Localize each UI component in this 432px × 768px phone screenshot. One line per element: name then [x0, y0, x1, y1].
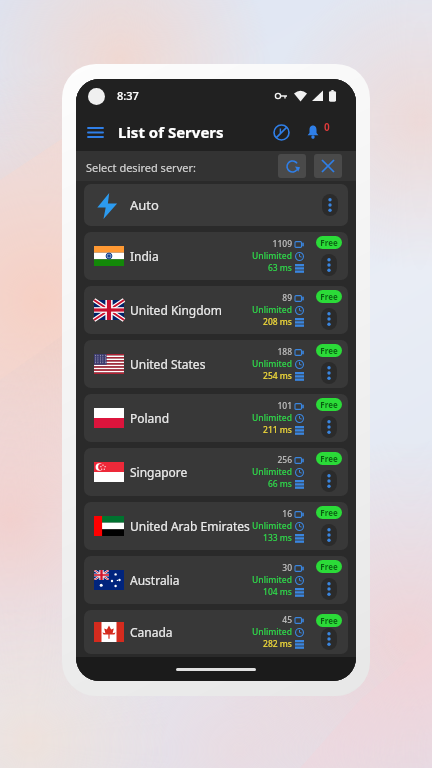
- staticText: Unlimited: [252, 574, 292, 586]
- staticText: United Kingdom: [130, 302, 260, 318]
- staticText: 211 ms: [263, 424, 292, 436]
- button[interactable]: United Kingdom: [84, 286, 348, 334]
- button[interactable]: More options: [321, 628, 337, 650]
- staticText: 89: [282, 292, 292, 304]
- button[interactable]: Free: [316, 344, 342, 357]
- staticText: Canada: [130, 624, 260, 640]
- staticText: Unlimited: [252, 304, 292, 316]
- button[interactable]: Free: [316, 614, 342, 627]
- staticText: List of Servers: [118, 122, 224, 142]
- staticText: 101: [277, 400, 292, 412]
- staticText: Free: [320, 291, 338, 302]
- staticText: Auto: [130, 196, 159, 214]
- staticText: 1109: [272, 238, 292, 250]
- button[interactable]: More options: [321, 416, 337, 438]
- button[interactable]: United States: [84, 340, 348, 388]
- button[interactable]: United Arab Emirates: [84, 502, 348, 550]
- staticText: Poland: [130, 410, 260, 426]
- button[interactable]: Poland: [84, 394, 348, 442]
- staticText: Unlimited: [252, 466, 292, 478]
- button[interactable]: Australia: [84, 556, 348, 604]
- staticText: 66 ms: [267, 478, 292, 490]
- staticText: 8:37: [117, 88, 139, 103]
- staticText: Unlimited: [252, 412, 292, 424]
- button[interactable]: Free: [316, 560, 342, 573]
- staticText: 45: [282, 614, 292, 626]
- staticText: Free: [320, 399, 338, 410]
- staticText: Australia: [130, 572, 260, 588]
- staticText: Free: [320, 561, 338, 572]
- staticText: United States: [130, 356, 260, 372]
- button[interactable]: Clear: [314, 154, 342, 178]
- staticText: Singapore: [130, 464, 260, 480]
- button[interactable]: More options: [321, 578, 337, 600]
- staticText: Unlimited: [252, 358, 292, 370]
- button[interactable]: More options: [321, 470, 337, 492]
- staticText: 30: [282, 562, 292, 574]
- staticText: Unlimited: [252, 520, 292, 532]
- button[interactable]: More options: [321, 524, 337, 546]
- staticText: 104 ms: [263, 586, 292, 598]
- staticText: Unlimited: [252, 250, 292, 262]
- staticText: Free: [320, 345, 338, 356]
- button[interactable]: VPN disconnected: [268, 119, 294, 145]
- staticText: 133 ms: [263, 532, 292, 544]
- button[interactable]: Auto: [84, 184, 348, 226]
- button[interactable]: More options: [321, 362, 337, 384]
- staticText: Free: [320, 615, 338, 626]
- button[interactable]: More options: [321, 308, 337, 330]
- staticText: 208 ms: [263, 316, 292, 328]
- button[interactable]: Free: [316, 452, 342, 465]
- button[interactable]: India: [84, 232, 348, 280]
- staticText: Unlimited: [252, 626, 292, 638]
- staticText: 256: [277, 454, 292, 466]
- staticText: 254 ms: [263, 370, 292, 382]
- button[interactable]: Menu: [82, 119, 108, 145]
- staticText: United Arab Emirates: [130, 518, 260, 534]
- staticText: 16: [282, 508, 292, 520]
- button[interactable]: Singapore: [84, 448, 348, 496]
- staticText: 0: [324, 120, 330, 134]
- staticText: 188: [277, 346, 292, 358]
- staticText: India: [130, 248, 260, 264]
- button[interactable]: Canada: [84, 610, 348, 654]
- staticText: Free: [320, 237, 338, 248]
- staticText: 63 ms: [267, 262, 292, 274]
- button[interactable]: More options: [321, 254, 337, 276]
- staticText: Free: [320, 507, 338, 518]
- button[interactable]: More options: [322, 194, 338, 216]
- button[interactable]: Refresh: [278, 154, 306, 178]
- button[interactable]: Free: [316, 398, 342, 411]
- staticText: 282 ms: [263, 638, 292, 650]
- button[interactable]: Notifications: [300, 119, 326, 145]
- staticText: Free: [320, 453, 338, 464]
- button[interactable]: Free: [316, 236, 342, 249]
- button[interactable]: Free: [316, 506, 342, 519]
- button[interactable]: Free: [316, 290, 342, 303]
- staticText: Select desired server:: [86, 160, 196, 175]
